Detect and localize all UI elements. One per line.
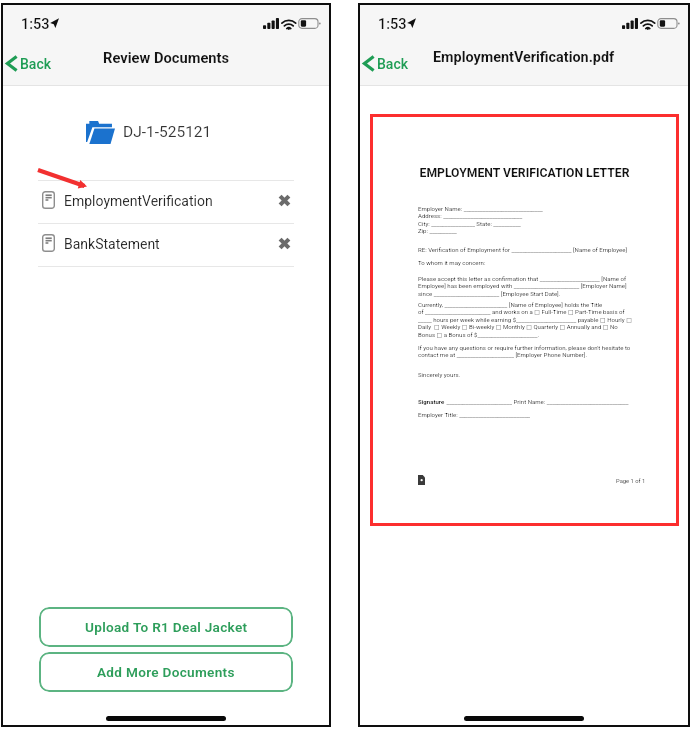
staticText: RE: Verification of Employment for _____… — [418, 246, 628, 253]
button[interactable]: EmploymentVerification — [42, 181, 296, 223]
staticText: Back — [377, 56, 408, 72]
staticText: Sincerely yours. — [418, 371, 461, 378]
staticText: BankStatement — [64, 236, 160, 252]
staticText: ________________________ Print Name: ___… — [445, 398, 629, 405]
button[interactable]: EmploymentVerification.pdf preview — [370, 114, 679, 526]
staticText: 1:53 — [378, 16, 407, 33]
staticText: Signature — [418, 398, 445, 405]
staticText: Please accept this letter as confirmatio… — [418, 275, 627, 282]
staticText: since ________________________ [Employee… — [418, 290, 561, 297]
staticText: Bonus □ a Bonus of $____________________… — [418, 331, 540, 338]
button[interactable]: Add More Documents — [39, 652, 293, 692]
staticText: EmploymentVerification — [64, 193, 213, 209]
staticText: 1:53 — [21, 16, 50, 33]
staticText: If you have any questions or require fur… — [418, 344, 631, 351]
staticText: Daily □ Weekly □ Bi-weekly □ Monthly □ Q… — [418, 323, 618, 330]
staticText: Employer Title: ________________________… — [418, 411, 531, 418]
button[interactable]: BankStatement — [42, 224, 296, 266]
staticText: EmploymentVerification.pdf — [433, 49, 615, 66]
staticText: _____ hours per week while earning $____… — [418, 316, 632, 323]
button[interactable]: Remove EmploymentVerification — [271, 187, 297, 213]
staticText: Zip: __________ — [418, 227, 457, 234]
staticText: of ________________________ and works on… — [418, 308, 625, 315]
staticText: contact me at _____________________ [Emp… — [418, 351, 588, 358]
staticText: Page 1 of 1 — [616, 478, 646, 485]
staticText: Address: _____________________________ — [418, 212, 523, 219]
staticText: Employer Name: _________________________… — [418, 205, 543, 212]
staticText: Back — [20, 56, 51, 72]
button[interactable]: Back — [358, 41, 416, 86]
staticText: City: ________________ State: __________ — [418, 220, 521, 227]
button[interactable]: Remove BankStatement — [271, 230, 297, 256]
staticText: Employee] has been employed with _______… — [418, 282, 627, 289]
button[interactable]: DJ-1-525121 — [1, 118, 331, 146]
staticText: Upload To R1 Deal Jacket — [85, 619, 248, 635]
staticText: DJ-1-525121 — [123, 123, 212, 141]
staticText: EMPLOYMENT VERIFICATION LETTER — [370, 166, 679, 180]
staticText: To whom it may concern: — [418, 259, 486, 266]
button[interactable]: Back — [1, 41, 59, 86]
button[interactable]: Upload To R1 Deal Jacket — [39, 607, 293, 647]
staticText: Add More Documents — [97, 664, 235, 680]
staticText: Currently, _______________________ [Name… — [418, 301, 603, 308]
staticText: Review Documents — [103, 49, 230, 66]
